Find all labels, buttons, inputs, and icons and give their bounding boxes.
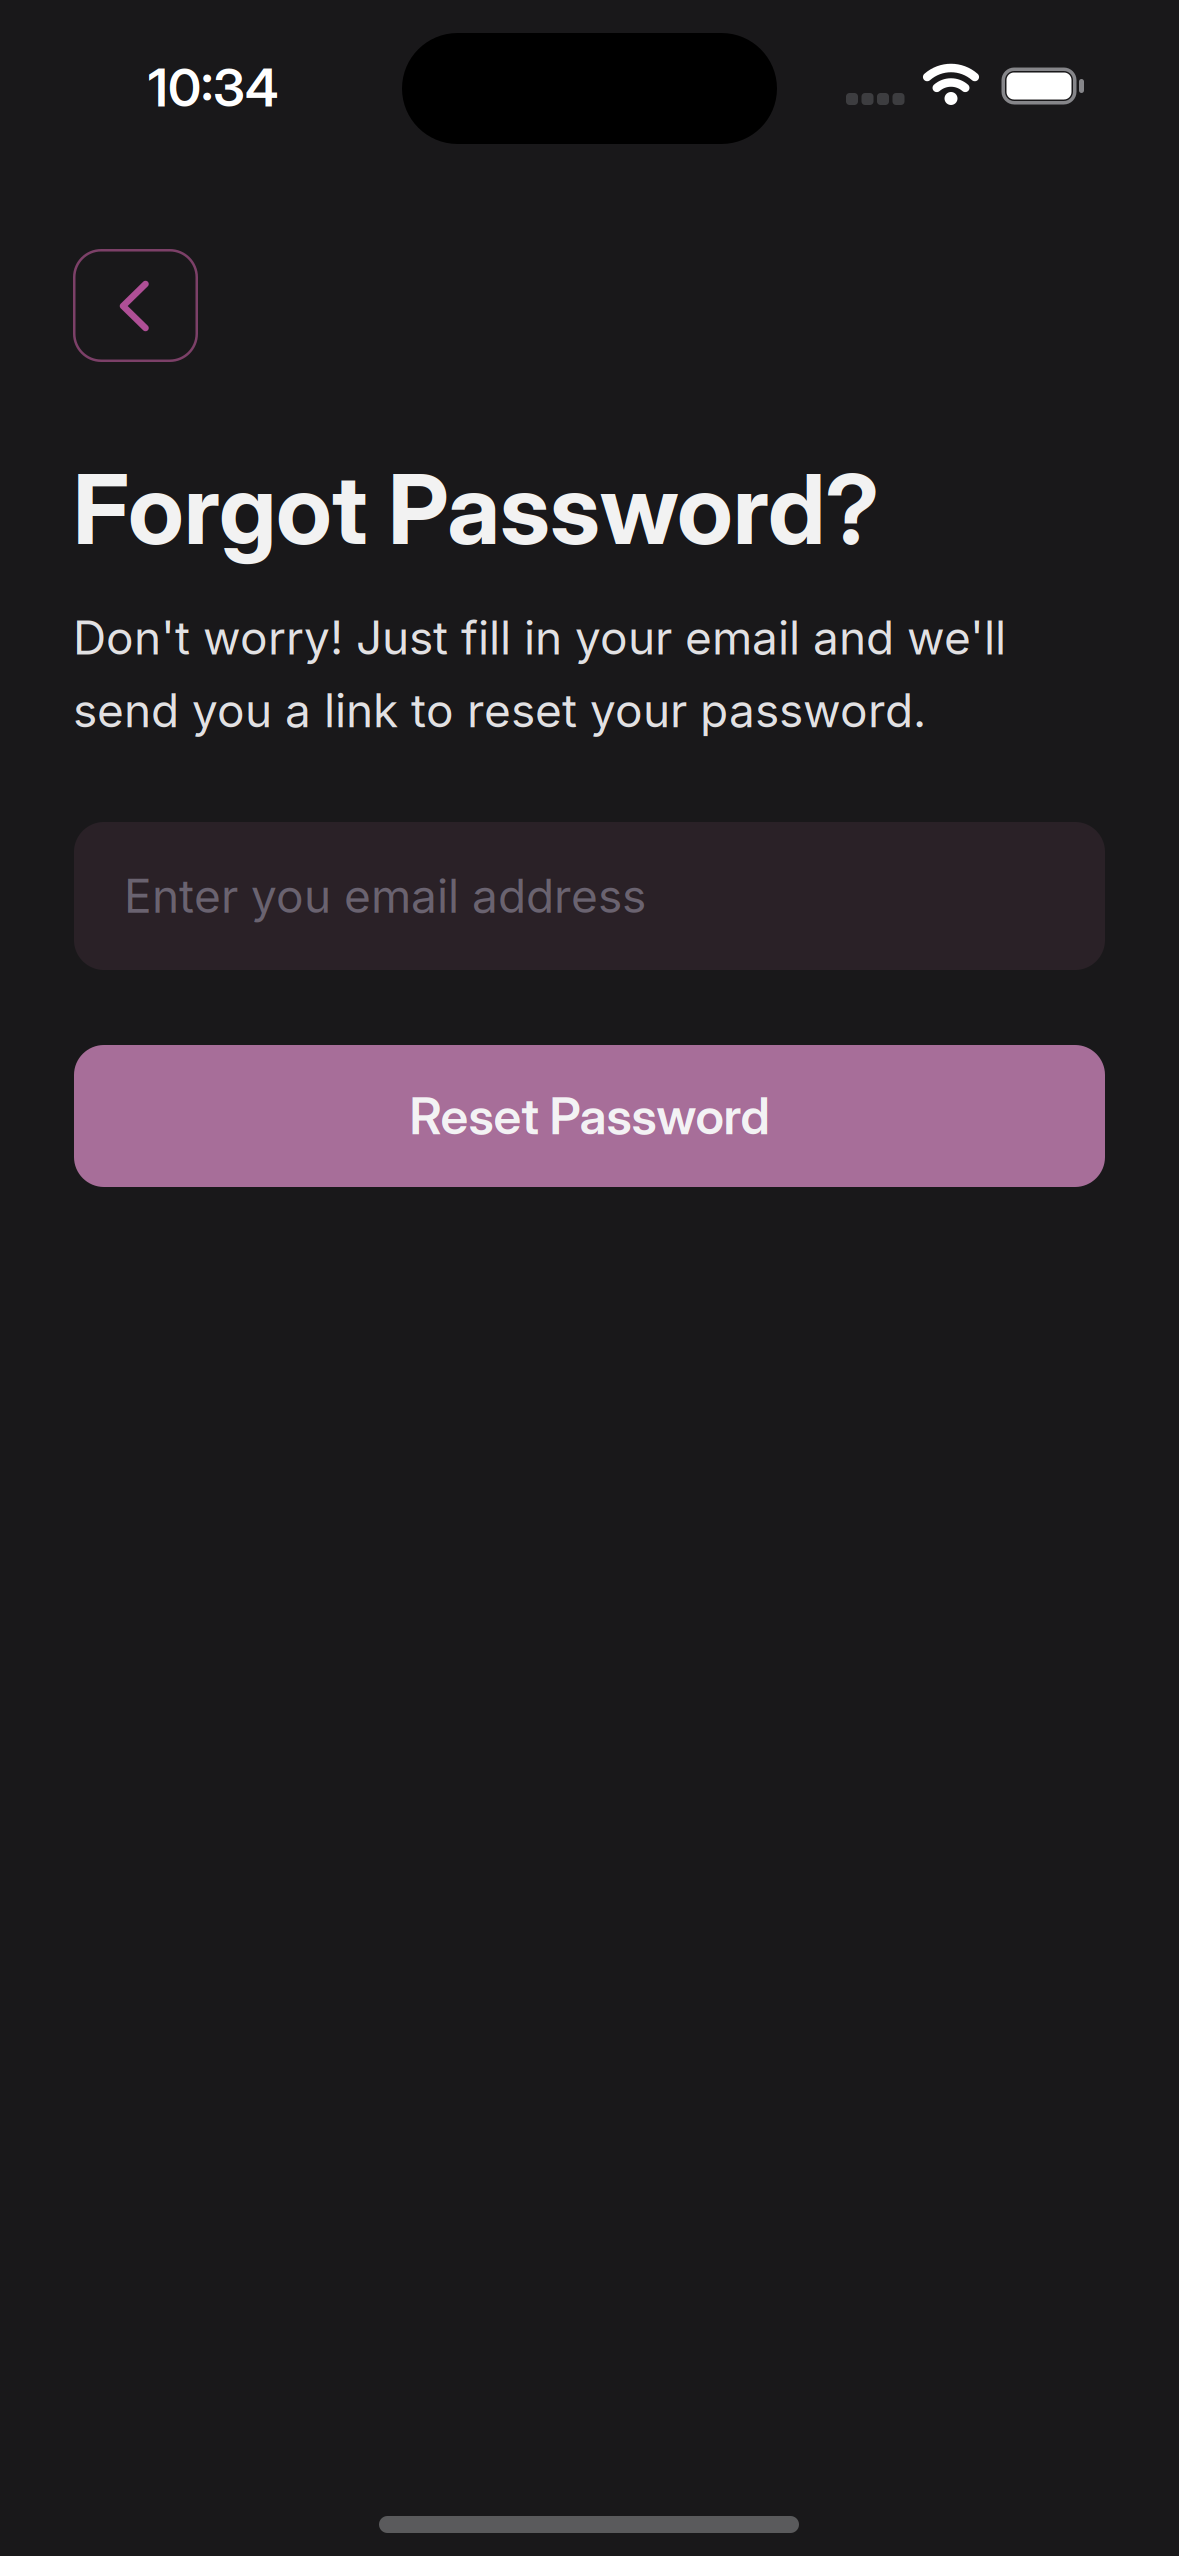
staticText: Forgot Password?	[73, 451, 879, 567]
staticText: Reset Password	[409, 1086, 769, 1146]
button[interactable]: Reset Password	[74, 1045, 1105, 1187]
staticText: Enter you email address	[124, 868, 646, 924]
staticText: Don't worry! Just fill in your email and…	[73, 610, 1006, 738]
staticText: 10:34	[148, 56, 278, 119]
button[interactable]: Enter you email address	[74, 822, 1105, 970]
button[interactable]	[73, 249, 198, 362]
